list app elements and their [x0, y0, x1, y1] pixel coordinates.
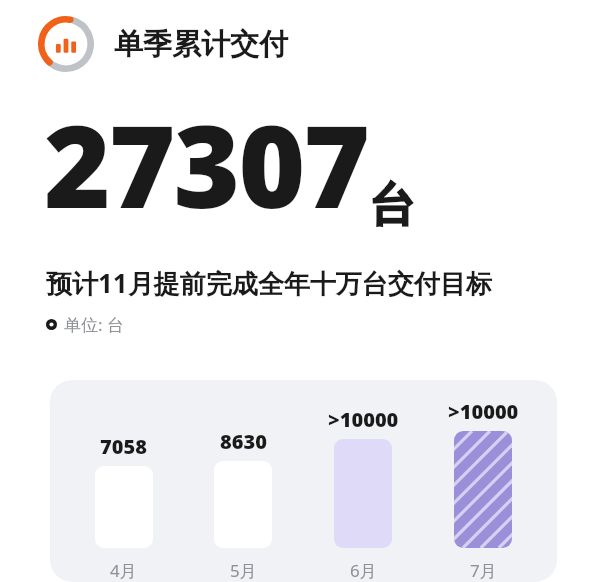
other: Quarterly cumulative delivery icon: [38, 16, 94, 72]
staticText: 5月: [230, 559, 257, 582]
staticText: 6月: [350, 559, 377, 582]
button[interactable]: 8630: [183, 428, 303, 582]
button[interactable]: >10000: [423, 398, 543, 582]
staticText: 预计11月提前完成全年十万台交付目标: [46, 265, 492, 301]
staticText: 8630: [220, 428, 267, 455]
staticText: >10000: [328, 406, 399, 433]
staticText: 7月: [470, 559, 497, 582]
staticText: 4月: [110, 559, 137, 582]
staticText: 27307: [44, 86, 369, 241]
staticText: 台: [369, 177, 415, 235]
staticText: 单季累计交付: [114, 26, 288, 63]
staticText: >10000: [448, 398, 519, 425]
button[interactable]: Quarterly cumulative delivery icon: [0, 14, 600, 74]
button[interactable]: 7058: [64, 433, 183, 582]
staticText: 单位: 台: [64, 313, 124, 336]
button[interactable]: >10000: [303, 406, 423, 582]
button[interactable]: 7058: [50, 380, 557, 582]
staticText: 7058: [100, 433, 147, 460]
